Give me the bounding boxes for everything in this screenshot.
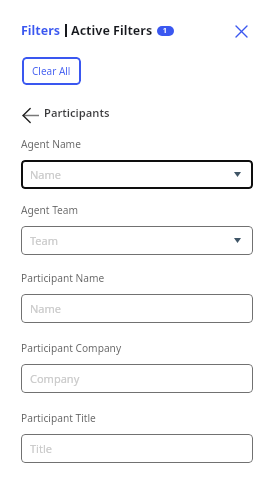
button[interactable]: Name xyxy=(21,160,253,189)
staticText: Name xyxy=(30,167,62,182)
staticText: Team xyxy=(30,233,59,248)
button[interactable]: Filters xyxy=(21,21,174,40)
staticText: Filters xyxy=(21,22,61,39)
staticText: Participant Company xyxy=(21,341,122,355)
staticText: Name xyxy=(30,301,62,316)
staticText: Title xyxy=(30,441,52,456)
button[interactable]: Title xyxy=(21,434,253,463)
staticText: Participant Name xyxy=(21,271,105,285)
button[interactable]: Close xyxy=(229,19,253,43)
button[interactable]: Name xyxy=(21,294,253,323)
button[interactable]: Clear All xyxy=(22,57,81,85)
staticText: Agent Name xyxy=(21,137,81,151)
staticText: Active Filters xyxy=(71,22,153,39)
button[interactable]: Back xyxy=(20,104,110,124)
staticText: Participant Title xyxy=(21,411,96,425)
staticText: Company xyxy=(30,371,80,386)
button[interactable]: Company xyxy=(21,364,253,393)
staticText: 1 xyxy=(163,26,168,36)
button[interactable]: Team xyxy=(21,226,253,255)
staticText: Participants xyxy=(44,105,110,120)
staticText: Agent Team xyxy=(21,203,79,217)
other: Back xyxy=(20,105,40,125)
staticText: Clear All xyxy=(32,64,71,78)
